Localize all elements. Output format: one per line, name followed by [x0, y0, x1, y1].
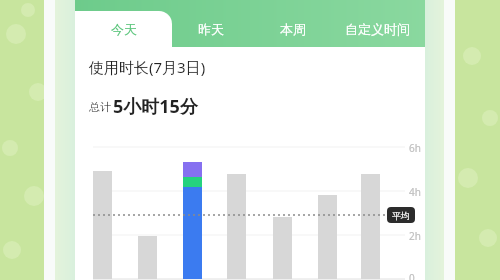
staticText: 5小时15分 [113, 94, 198, 119]
staticText: 平均 [392, 210, 410, 221]
button[interactable]: 平均 [387, 207, 415, 223]
button[interactable]: 本周 [269, 11, 317, 47]
staticText: 总计 [89, 100, 111, 114]
staticText: 0 [409, 271, 415, 280]
button[interactable]: 昨天 [187, 11, 235, 47]
staticText: 4h [409, 185, 421, 199]
staticText: 本周 [280, 21, 306, 37]
staticText: 使用时长(7月3日) [89, 57, 206, 77]
staticText: 昨天 [198, 21, 224, 37]
button[interactable]: 今天 [75, 11, 172, 47]
staticText: 自定义时间 [345, 21, 410, 37]
staticText: 6h [409, 141, 421, 155]
button[interactable]: 自定义时间 [333, 11, 421, 47]
staticText: 今天 [111, 21, 137, 37]
staticText: 2h [409, 229, 421, 243]
